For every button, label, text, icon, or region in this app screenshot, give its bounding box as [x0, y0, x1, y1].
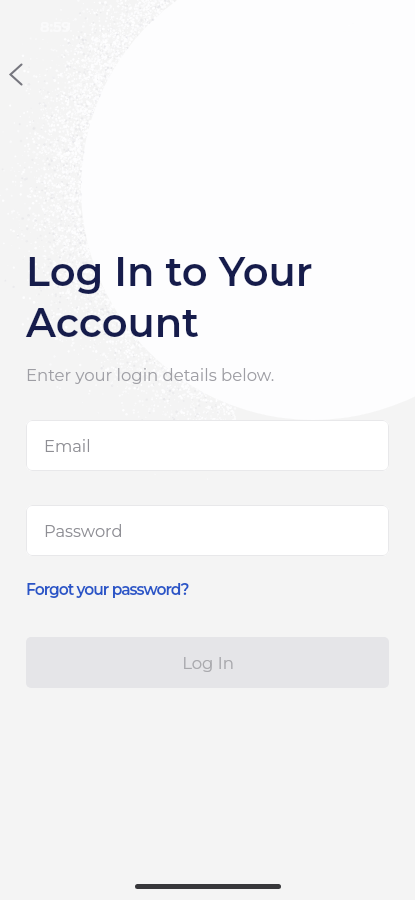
staticText: Forgot your password? — [26, 580, 189, 599]
staticText: Log In to Your Account — [26, 246, 313, 348]
button[interactable]: Forgot your password? — [26, 580, 189, 599]
button[interactable]: Log In — [26, 637, 389, 688]
staticText: Log In — [182, 653, 234, 673]
staticText: Enter your login details below. — [26, 365, 275, 385]
staticText: Password — [44, 521, 123, 541]
button[interactable]: Back — [0, 52, 44, 96]
button[interactable]: Email — [26, 420, 389, 471]
button[interactable]: Password — [26, 505, 389, 556]
staticText: Email — [44, 436, 91, 456]
